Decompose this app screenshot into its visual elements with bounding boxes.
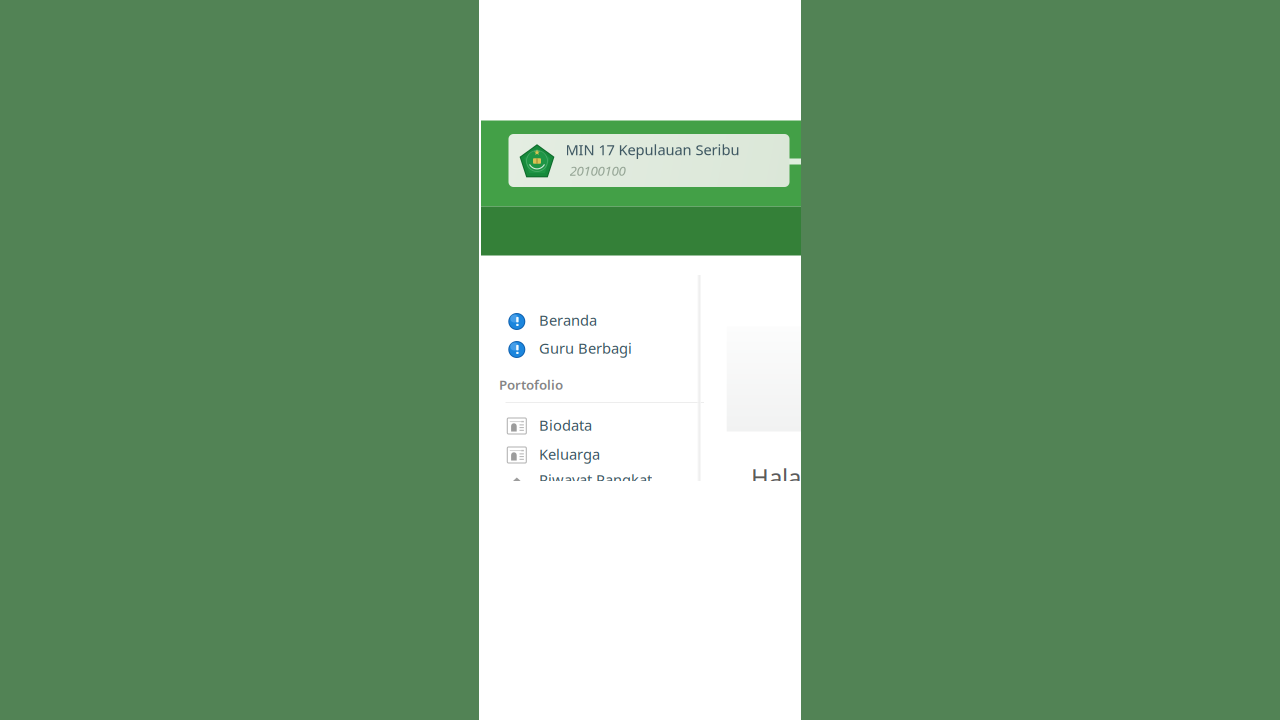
staticText: Keluarga (539, 444, 600, 464)
staticText: Halaman (751, 461, 851, 493)
button[interactable]: Riwayat Pangkat (482, 466, 703, 492)
staticText: Riwayat Pangkat (539, 470, 652, 489)
staticText: MIN 17 Kepulauan Seribu (565, 140, 739, 159)
staticText: Portofolio (499, 376, 563, 393)
button[interactable]: Guru Berbagi (482, 335, 703, 361)
staticText: Guru Berbagi (539, 338, 632, 358)
staticText: 20100100 (569, 162, 625, 179)
button[interactable]: Keluarga (482, 441, 703, 467)
staticText: Biodata (539, 415, 592, 435)
button[interactable]: Biodata (482, 412, 703, 438)
button[interactable]: MIN 17 Kepulauan Seribu (508, 134, 789, 187)
staticText: Beranda (539, 310, 597, 330)
button[interactable]: Beranda (482, 307, 703, 333)
